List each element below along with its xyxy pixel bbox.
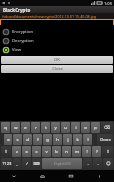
button[interactable]: w: [11, 122, 20, 133]
staticText: c: [35, 149, 38, 155]
button[interactable]: ⌨: [32, 158, 41, 169]
staticText: ?: [96, 149, 98, 155]
staticText: s: [16, 137, 19, 143]
button[interactable]: a: [4, 134, 12, 145]
staticText: .: [97, 161, 99, 167]
button[interactable]: z: [12, 146, 21, 157]
staticText: a: [7, 137, 10, 143]
staticText: b: [55, 149, 58, 155]
staticText: OK: [54, 57, 60, 63]
button[interactable]: o: [81, 122, 90, 133]
button[interactable]: x: [22, 146, 31, 157]
staticText: d: [26, 137, 29, 143]
staticText: z: [16, 149, 18, 155]
staticText: View: [12, 47, 22, 53]
button[interactable]: ?: [92, 146, 101, 157]
button[interactable]: .: [93, 158, 102, 169]
button[interactable]: t: [41, 122, 50, 133]
button[interactable]: View: [0, 45, 114, 54]
button[interactable]: OK: [1, 56, 113, 64]
staticText: x: [25, 149, 28, 155]
staticText: ⇧: [4, 149, 8, 154]
staticText: ⇧: [106, 149, 110, 154]
button[interactable]: y: [51, 122, 60, 133]
button[interactable]: More options: [85, 170, 114, 182]
staticText: k: [76, 137, 79, 143]
button[interactable]: k: [73, 134, 82, 145]
staticText: e: [24, 125, 27, 131]
button[interactable]: v: [42, 146, 51, 157]
button[interactable]: ⇧: [102, 146, 113, 157]
button[interactable]: h: [53, 134, 62, 145]
button[interactable]: e: [21, 122, 30, 133]
staticText: ?123: [2, 161, 12, 167]
staticText: /: [26, 161, 28, 167]
button[interactable]: c: [32, 146, 41, 157]
staticText: q: [4, 125, 7, 131]
staticText: Encryption: [12, 29, 34, 35]
button[interactable]: !: [82, 146, 91, 157]
button[interactable]: f: [33, 134, 42, 145]
staticText: ⌨: [33, 161, 40, 166]
staticText: ,: [16, 161, 18, 167]
button[interactable]: ?123: [1, 158, 12, 169]
staticText: ⌫: [104, 125, 110, 130]
button[interactable]: i: [71, 122, 80, 133]
staticText: v: [45, 149, 48, 155]
staticText: ☺: [106, 161, 111, 166]
staticText: j: [67, 137, 69, 143]
staticText: English(US): [54, 162, 71, 166]
button[interactable]: English(US): [42, 158, 82, 169]
staticText: h: [56, 137, 59, 143]
button[interactable]: ⌫: [101, 122, 113, 133]
button[interactable]: q: [1, 122, 10, 133]
button[interactable]: d: [23, 134, 32, 145]
button[interactable]: u: [61, 122, 70, 133]
button[interactable]: j: [63, 134, 72, 145]
button[interactable]: b: [52, 146, 61, 157]
button[interactable]: g: [43, 134, 52, 145]
staticText: o: [84, 125, 87, 131]
staticText: w: [14, 125, 18, 131]
button[interactable]: n: [62, 146, 71, 157]
button[interactable]: Recent apps: [56, 170, 85, 182]
staticText: y: [54, 125, 57, 131]
button[interactable]: ☺: [103, 158, 113, 169]
button[interactable]: Home: [28, 170, 56, 182]
button[interactable]: /: [22, 158, 31, 169]
staticText: f: [37, 137, 39, 143]
staticText: r: [35, 125, 37, 131]
button[interactable]: Encryption: [0, 27, 114, 36]
button[interactable]: m: [72, 146, 81, 157]
button[interactable]: r: [31, 122, 40, 133]
staticText: Close: [52, 66, 63, 72]
button[interactable]: /sdcard/documents/newcrypto/2012-10-01 1…: [0, 13, 114, 19]
staticText: l: [87, 137, 89, 143]
staticText: .: [87, 161, 89, 167]
button[interactable]: ,: [13, 158, 21, 169]
staticText: t: [45, 125, 47, 131]
button[interactable]: Done: [97, 134, 113, 145]
staticText: m: [75, 149, 79, 155]
staticText: g: [46, 137, 49, 143]
button[interactable]: ⇧: [1, 146, 11, 157]
staticText: /sdcard/documents/newcrypto/2012-10-01 1…: [2, 14, 96, 19]
staticText: 1:05: [104, 1, 112, 6]
button[interactable]: .: [83, 158, 92, 169]
staticText: BlackCrypto: [3, 7, 31, 13]
staticText: !: [86, 149, 88, 155]
staticText: n: [65, 149, 68, 155]
staticText: p: [94, 125, 97, 131]
staticText: Done: [100, 137, 111, 143]
button[interactable]: Back: [0, 170, 28, 182]
button[interactable]: p: [91, 122, 100, 133]
button[interactable]: s: [13, 134, 22, 145]
button[interactable]: Close: [1, 65, 113, 73]
staticText: i: [75, 125, 77, 131]
button[interactable]: Decryption: [0, 36, 114, 45]
button[interactable]: l: [83, 134, 92, 145]
staticText: u: [64, 125, 67, 131]
staticText: Decryption: [12, 38, 34, 44]
